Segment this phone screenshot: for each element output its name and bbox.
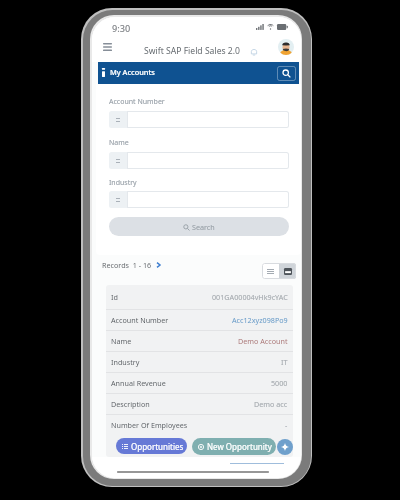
- staticText: 9:30: [112, 22, 131, 35]
- staticText: 001GA00004vHk9cYAC: [212, 292, 288, 302]
- button[interactable]: Opportunities: [116, 438, 187, 454]
- staticText: My Accounts: [110, 67, 155, 77]
- button[interactable]: Id: [106, 285, 293, 309]
- button[interactable]: Card view: [279, 263, 296, 279]
- button[interactable]: Filter operator: [109, 191, 127, 208]
- button[interactable]: Add: [277, 439, 293, 455]
- button[interactable]: List view: [262, 263, 279, 279]
- button[interactable]: [127, 111, 289, 128]
- staticText: Opportunities: [131, 441, 184, 452]
- staticText: Account Number: [111, 315, 169, 325]
- button[interactable]: Notifications: [247, 45, 261, 59]
- staticText: Search: [192, 222, 215, 232]
- button[interactable]: Filter operator: [109, 111, 127, 128]
- staticText: New Opportunity: [207, 441, 272, 452]
- staticText: Demo Account: [238, 336, 288, 346]
- button[interactable]: Menu: [98, 40, 116, 54]
- staticText: Acc12xyz098Po9: [232, 315, 288, 325]
- staticText: Industry: [109, 178, 137, 188]
- button[interactable]: Description: [106, 394, 293, 414]
- button[interactable]: Records 1 - 16: [102, 260, 161, 270]
- staticText: -: [285, 420, 288, 430]
- button[interactable]: Annual Revenue: [106, 373, 293, 393]
- staticText: Records 1 - 16: [102, 260, 152, 270]
- button[interactable]: [127, 152, 289, 169]
- staticText: Annual Revenue: [111, 378, 166, 388]
- button[interactable]: Search: [277, 66, 296, 81]
- staticText: Account Number: [109, 97, 165, 107]
- staticText: Demo acc: [254, 399, 288, 409]
- button[interactable]: Profile: [278, 39, 294, 55]
- button[interactable]: Filter operator: [109, 152, 127, 169]
- button[interactable]: Number Of Employees: [106, 415, 293, 435]
- button[interactable]: Name: [106, 331, 293, 351]
- button[interactable]: New Opportunity: [192, 438, 276, 455]
- staticText: Swift SAP Field Sales 2.0: [144, 45, 240, 57]
- staticText: Description: [111, 399, 150, 409]
- staticText: Industry: [111, 357, 140, 367]
- staticText: Number Of Employees: [111, 420, 188, 430]
- staticText: 5000: [271, 378, 288, 388]
- staticText: Name: [111, 336, 132, 346]
- staticText: IT: [281, 357, 288, 367]
- button[interactable]: [127, 191, 289, 208]
- button[interactable]: Account Number: [106, 310, 293, 330]
- button[interactable]: Industry: [106, 352, 293, 372]
- button[interactable]: Search: [109, 217, 289, 236]
- staticText: Name: [109, 138, 129, 148]
- staticText: Id: [111, 292, 118, 302]
